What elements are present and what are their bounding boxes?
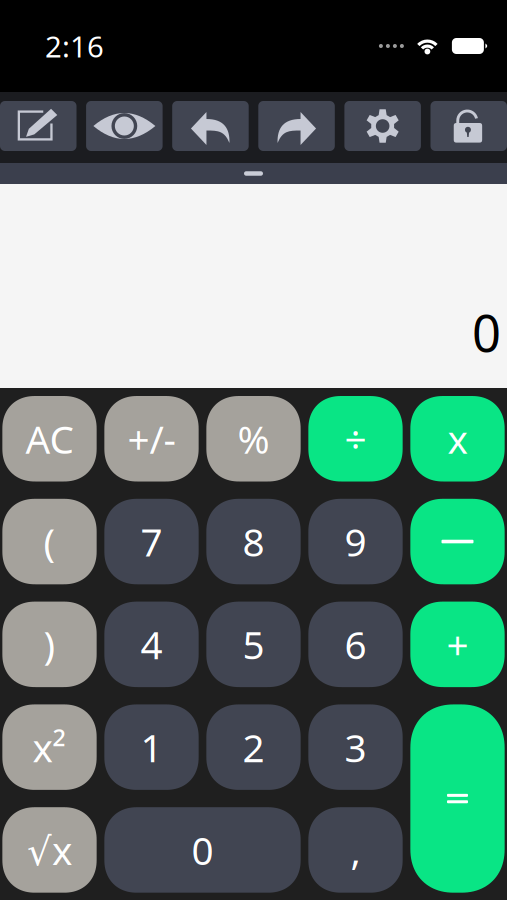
staticText: 4 [140,619,162,670]
button[interactable]: ÷ [308,396,403,481]
button[interactable]: 8 [206,499,301,584]
button[interactable]: Undo [172,101,249,151]
staticText: x [447,413,467,464]
button[interactable]: Settings [344,101,421,151]
button[interactable]: 7 [104,499,199,584]
staticText: 9 [344,516,366,567]
staticText: 7 [140,516,162,567]
staticText: 8 [242,516,264,567]
button[interactable]: ) [2,602,97,687]
button[interactable]: + [410,602,505,687]
staticText: +/- [127,413,175,464]
button[interactable]: Lock [430,101,507,151]
staticText: 0 [472,299,501,366]
button[interactable]: 1 [104,704,199,790]
staticText: AC [25,413,73,464]
button[interactable]: 5 [206,602,301,687]
staticText: x² [32,721,66,773]
button[interactable]: 4 [104,602,199,687]
button[interactable]: +/- [104,396,199,481]
button[interactable]: x [410,396,505,481]
staticText: + [446,619,468,670]
staticText: ( [43,516,55,567]
staticText: , [350,824,360,876]
staticText: 3 [344,721,366,773]
button[interactable]: Preview [86,101,163,151]
button[interactable]: % [206,396,301,481]
button[interactable]: Equals [410,704,505,893]
button[interactable]: 0 [104,807,301,893]
staticText: 5 [242,619,264,670]
button[interactable]: x² [2,704,97,790]
button[interactable]: Minus [410,499,505,584]
staticText: 2:16 [45,26,104,65]
button[interactable]: Compose [0,101,76,151]
staticText: √x [27,824,72,876]
staticText: % [237,413,269,464]
button[interactable]: √x [2,807,97,893]
button[interactable]: AC [2,396,97,481]
button[interactable]: 2 [206,704,301,790]
staticText: 0 [191,824,213,876]
staticText: 6 [344,619,366,670]
button[interactable]: 6 [308,602,403,687]
button[interactable]: 3 [308,704,403,790]
button[interactable]: , [308,807,403,893]
staticText: 1 [140,721,162,773]
staticText: ÷ [344,413,366,464]
button[interactable]: Redo [258,101,335,151]
staticText: 2 [242,721,264,773]
button[interactable]: 9 [308,499,403,584]
button[interactable]: ( [2,499,97,584]
staticText: ) [43,619,55,670]
